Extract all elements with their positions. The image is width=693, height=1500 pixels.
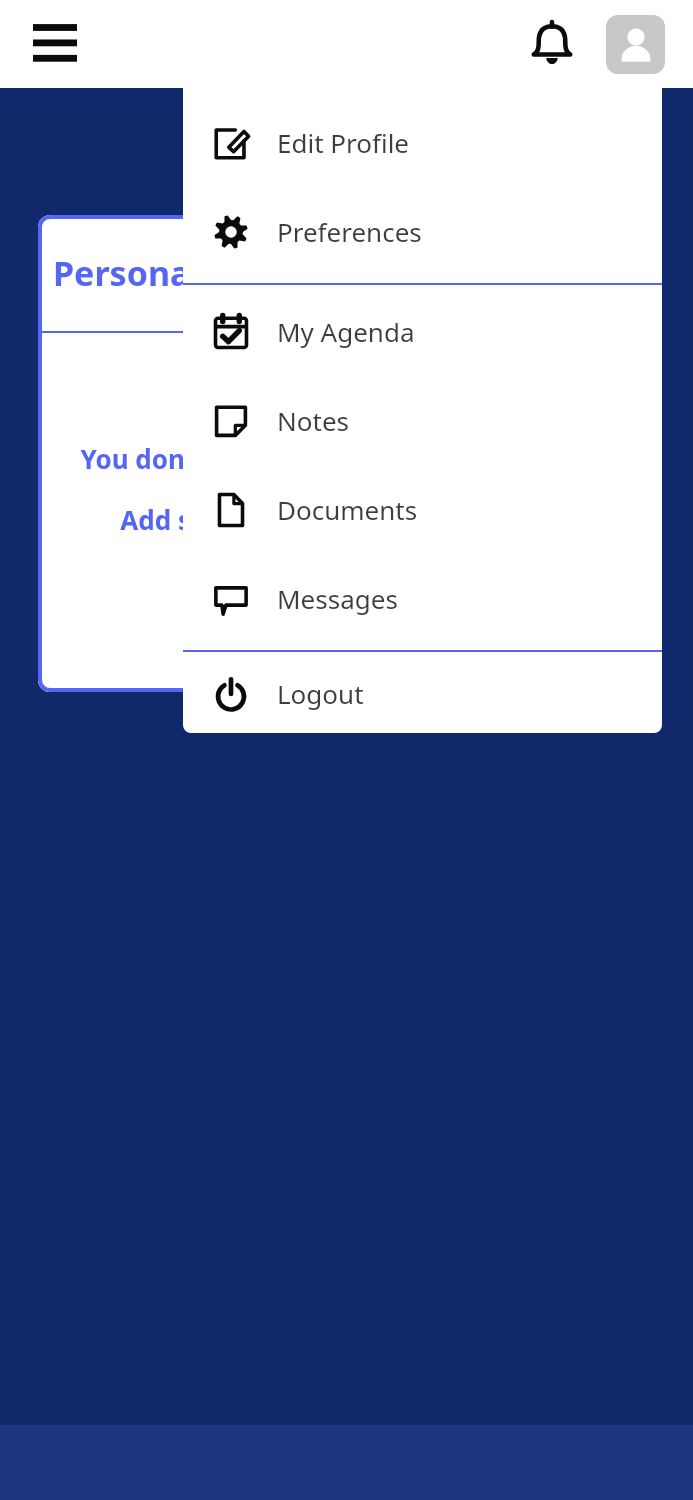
staticText: Add sessions — [120, 502, 287, 537]
staticText: Logout — [277, 676, 364, 711]
staticText: My Agenda — [277, 314, 415, 349]
staticText: Documents — [277, 492, 418, 527]
staticText: Edit Profile — [277, 125, 410, 160]
staticText: Preferences — [277, 214, 422, 249]
button[interactable]: Edit Profile — [183, 98, 662, 187]
button[interactable]: Logout — [183, 654, 662, 733]
button[interactable]: Documents — [183, 465, 662, 554]
staticText: Messages — [277, 581, 398, 616]
staticText: Notes — [277, 403, 349, 438]
button[interactable]: Preferences — [183, 187, 662, 276]
button[interactable]: Open navigation menu — [22, 11, 88, 77]
button[interactable]: Messages — [183, 554, 662, 643]
staticText: You don't have any — [80, 441, 327, 476]
staticText: Personal Sessions — [53, 250, 354, 296]
button[interactable]: My Agenda — [183, 287, 662, 376]
button[interactable]: Notes — [183, 376, 662, 465]
button[interactable]: Profile — [606, 15, 665, 74]
button[interactable]: Notifications — [519, 11, 585, 77]
